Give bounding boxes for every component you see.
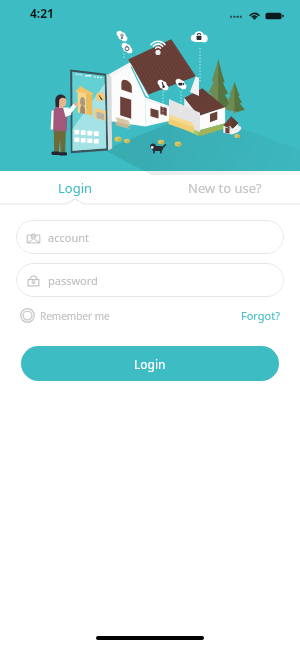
staticText: Remember me <box>40 309 110 323</box>
button[interactable]: Login <box>21 346 279 381</box>
button[interactable]: New to use? <box>150 171 300 205</box>
staticText: Login <box>134 356 166 372</box>
button[interactable]: password <box>16 263 284 297</box>
button[interactable]: Login <box>0 171 150 205</box>
staticText: password <box>48 273 98 288</box>
staticText: New to use? <box>188 179 262 197</box>
button[interactable]: Remember me <box>20 306 110 325</box>
staticText: Forgot? <box>241 308 280 323</box>
button[interactable]: Forgot? <box>241 306 280 325</box>
button[interactable]: account <box>16 220 284 254</box>
other: Signal, wifi and battery status <box>230 11 283 21</box>
staticText: account <box>48 230 89 245</box>
staticText: 4:21 <box>30 5 54 21</box>
staticText: Login <box>58 179 93 197</box>
